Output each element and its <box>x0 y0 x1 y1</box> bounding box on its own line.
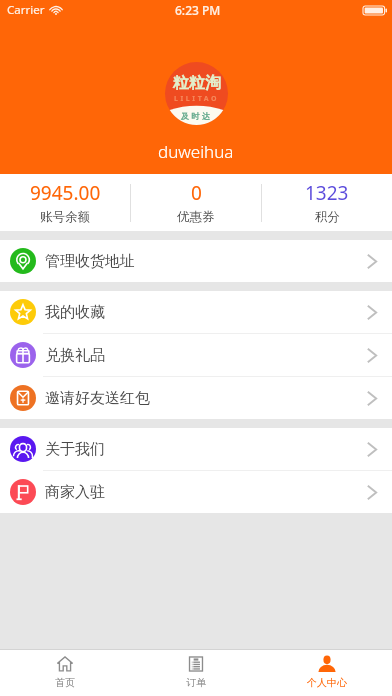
button[interactable]: 管理收货地址 <box>0 240 392 282</box>
staticText: 邀请好友送红包 <box>45 389 150 408</box>
button[interactable]: 首页 <box>0 650 130 696</box>
staticText: 商家入驻 <box>45 483 105 502</box>
button[interactable]: 邀请好友送红包 <box>0 377 392 419</box>
button[interactable]: 兑换礼品 <box>0 334 392 376</box>
button[interactable]: 0 <box>131 174 261 231</box>
staticText: 0 <box>191 180 202 206</box>
staticText: LILITAO <box>174 94 220 104</box>
staticText: 积分 <box>315 209 340 225</box>
staticText: 我的收藏 <box>45 303 105 322</box>
staticText: duweihua <box>158 140 234 163</box>
staticText: 粒粒淘 <box>173 73 221 93</box>
staticText: 6:23 PM <box>175 2 221 18</box>
staticText: 优惠券 <box>177 209 215 225</box>
button[interactable]: 9945.00 <box>0 174 130 231</box>
staticText: 首页 <box>55 676 75 689</box>
button[interactable]: 商家入驻 <box>0 471 392 513</box>
button[interactable]: 订单 <box>130 650 261 696</box>
staticText: 关于我们 <box>45 440 105 459</box>
staticText: Carrier <box>7 2 45 18</box>
staticText: 及时达 <box>181 111 213 121</box>
button[interactable]: 个人中心 <box>261 650 392 696</box>
button[interactable]: 我的收藏 <box>0 291 392 333</box>
staticText: 9945.00 <box>30 180 101 206</box>
staticText: 订单 <box>186 676 206 689</box>
staticText: 兑换礼品 <box>45 346 105 365</box>
staticText: 个人中心 <box>307 676 347 689</box>
staticText: 账号余额 <box>40 209 90 225</box>
staticText: 管理收货地址 <box>45 252 135 271</box>
button[interactable]: 1323 <box>262 174 392 231</box>
button[interactable]: 关于我们 <box>0 428 392 470</box>
staticText: 1323 <box>305 180 349 206</box>
